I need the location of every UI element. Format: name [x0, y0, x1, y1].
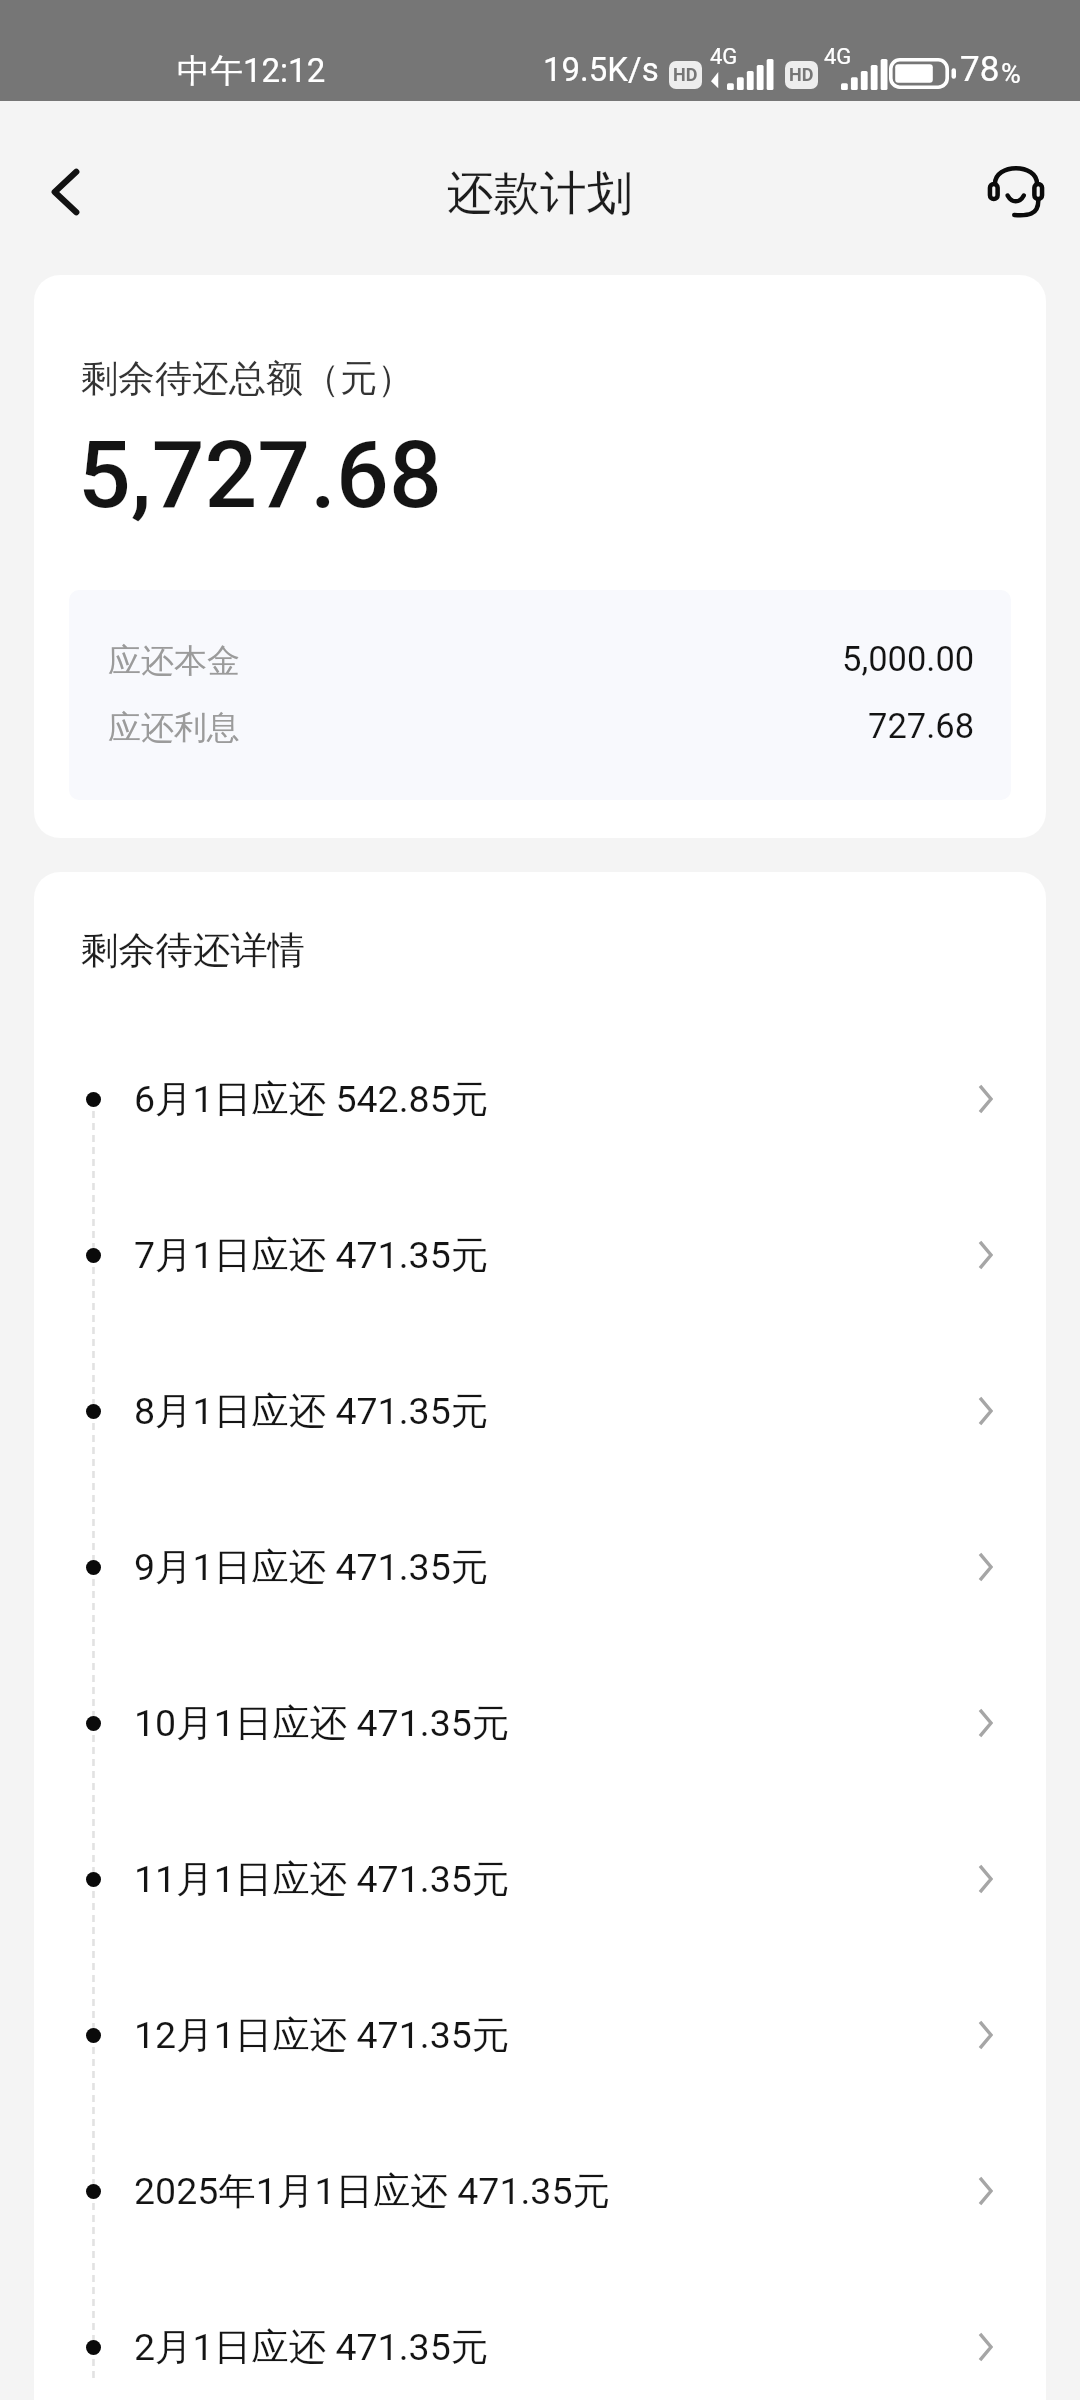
staticText: 还款计划	[447, 164, 633, 223]
button[interactable]: 2025年1月1日应还 471.35元	[34, 2113, 1046, 2269]
button[interactable]: 12月1日应还 471.35元	[34, 1957, 1046, 2113]
staticText: 4G	[824, 44, 852, 70]
staticText: 4G	[710, 44, 738, 70]
button[interactable]: 10月1日应还 471.35元	[34, 1645, 1046, 1801]
staticText: 剩余待还详情	[81, 927, 305, 974]
staticText: 7月1日应还 471.35元	[134, 1232, 489, 1279]
staticText: 应还利息	[108, 707, 240, 749]
button[interactable]: Back	[10, 137, 120, 247]
staticText: 9月1日应还 471.35元	[134, 1544, 489, 1591]
button[interactable]: 7月1日应还 471.35元	[34, 1177, 1046, 1333]
button[interactable]: 9月1日应还 471.35元	[34, 1489, 1046, 1645]
button[interactable]: 2月1日应还 471.35元	[34, 2269, 1046, 2400]
staticText: 2月1日应还 471.35元	[134, 2324, 489, 2371]
staticText: 5,727.68	[78, 421, 442, 530]
staticText: 78	[960, 49, 1000, 90]
staticText: 11月1日应还 471.35元	[134, 1856, 510, 1903]
staticText: 727.68	[868, 706, 975, 746]
staticText: 8月1日应还 471.35元	[134, 1388, 489, 1435]
staticText: HD	[789, 64, 814, 85]
button[interactable]: Customer service	[961, 134, 1071, 244]
staticText: 10月1日应还 471.35元	[134, 1700, 510, 1747]
staticText: %	[1001, 58, 1021, 90]
button[interactable]: 6月1日应还 542.85元	[34, 1021, 1046, 1177]
staticText: 应还本金	[108, 640, 240, 682]
staticText: 6月1日应还 542.85元	[134, 1076, 489, 1123]
staticText: 2025年1月1日应还 471.35元	[134, 2168, 611, 2215]
staticText: 19.5K/s	[543, 50, 659, 89]
staticText: 中午12:12	[177, 50, 326, 92]
staticText: HD	[673, 64, 698, 85]
staticText: 12月1日应还 471.35元	[134, 2012, 510, 2059]
button[interactable]: 8月1日应还 471.35元	[34, 1333, 1046, 1489]
staticText: 5,000.00	[842, 639, 975, 679]
staticText: 剩余待还总额（元）	[81, 355, 414, 402]
button[interactable]: 11月1日应还 471.35元	[34, 1801, 1046, 1957]
